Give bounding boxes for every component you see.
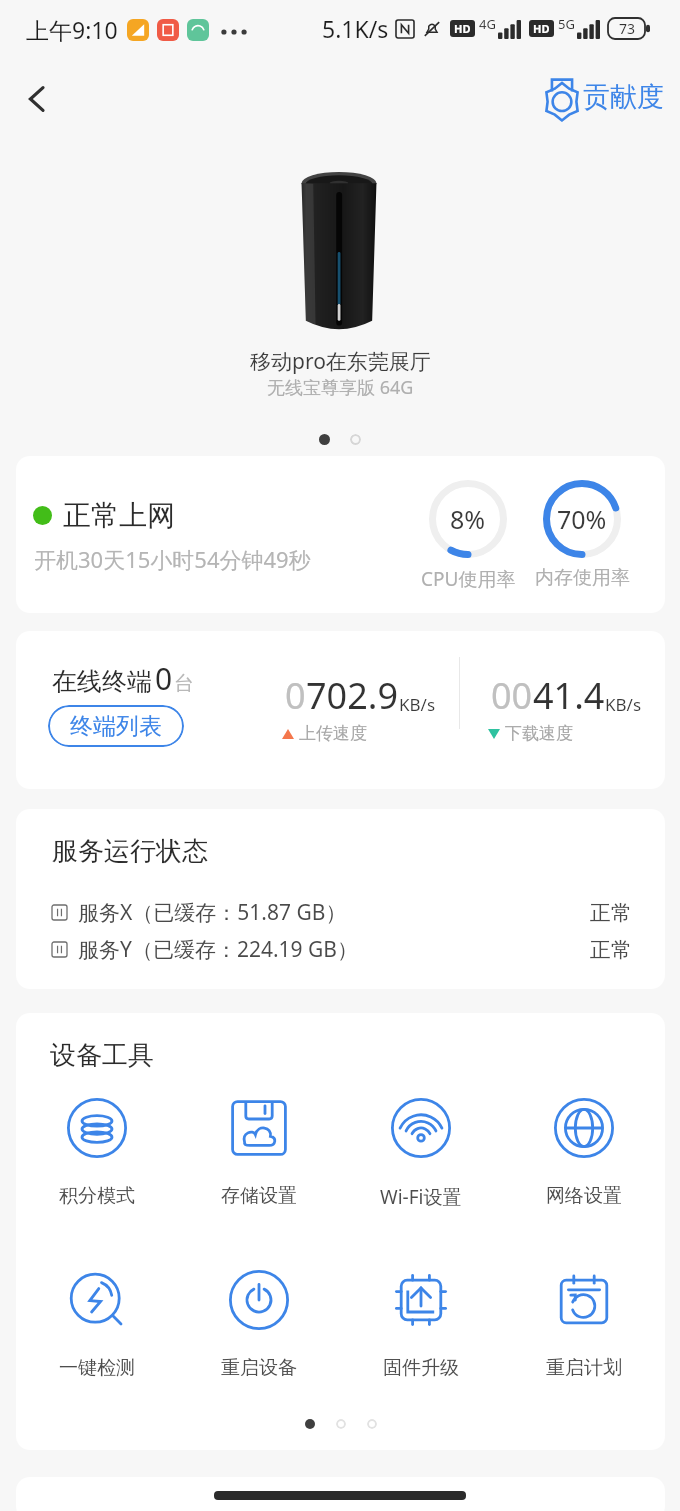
staticText: 网络设置: [546, 1184, 622, 1208]
staticText: 终端列表: [70, 712, 162, 741]
button[interactable]: 网络设置: [509, 1088, 659, 1218]
button[interactable]: Device 1: [319, 434, 330, 445]
staticText: 下载速度: [505, 723, 573, 744]
button[interactable]: Back: [8, 70, 66, 128]
staticText: 无线宝尊享版 64G: [267, 375, 414, 400]
staticText: 正常: [590, 937, 632, 963]
staticText: 73: [619, 19, 636, 38]
button[interactable]: 重启设备: [184, 1260, 334, 1390]
button[interactable]: 一键检测: [22, 1260, 172, 1390]
staticText: 8%: [450, 502, 486, 536]
staticText: 内存使用率: [535, 566, 630, 590]
staticText: 上午9:10: [26, 14, 118, 45]
button[interactable]: 积分模式: [22, 1088, 172, 1218]
button[interactable]: Wi-Fi设置: [346, 1088, 496, 1218]
staticText: 41.4: [533, 671, 605, 720]
staticText: KB/s: [605, 693, 642, 716]
button[interactable]: Page 3: [367, 1419, 377, 1429]
staticText: 服务Y（已缓存：224.19 GB）: [78, 935, 358, 964]
staticText: 00: [491, 671, 533, 720]
button[interactable]: 贡献度: [540, 72, 668, 124]
staticText: 设备工具: [50, 1039, 154, 1072]
staticText: 服务运行状态: [52, 835, 208, 868]
button[interactable]: 固件升级: [346, 1260, 496, 1390]
button[interactable]: Device 2: [350, 434, 361, 445]
staticText: 服务X（已缓存：51.87 GB）: [78, 898, 347, 927]
staticText: 重启设备: [221, 1356, 297, 1380]
staticText: 一键检测: [59, 1356, 135, 1380]
staticText: 上传速度: [299, 723, 367, 744]
staticText: 在线终端: [52, 666, 152, 697]
staticText: 移动pro在东莞展厅: [250, 347, 431, 376]
staticText: 积分模式: [59, 1184, 135, 1208]
staticText: 开机30天15小时54分钟49秒: [34, 544, 311, 574]
button[interactable]: Page 1: [305, 1419, 315, 1429]
staticText: HD: [454, 21, 471, 36]
staticText: 4G: [479, 15, 496, 33]
button[interactable]: 终端列表: [48, 705, 184, 747]
staticText: 正常上网: [63, 498, 175, 533]
button[interactable]: 重启计划: [509, 1260, 659, 1390]
staticText: 贡献度: [583, 80, 664, 114]
staticText: KB/s: [399, 693, 436, 716]
button[interactable]: 存储设置: [184, 1088, 334, 1218]
staticText: 5.1K/s: [322, 13, 389, 44]
staticText: 0: [285, 671, 306, 720]
staticText: 正常: [590, 900, 632, 926]
staticText: Wi-Fi设置: [380, 1184, 462, 1210]
staticText: 0: [155, 658, 173, 699]
staticText: 重启计划: [546, 1356, 622, 1380]
button[interactable]: Page 2: [336, 1419, 346, 1429]
staticText: 5G: [558, 15, 575, 33]
staticText: HD: [533, 21, 550, 36]
staticText: 台: [174, 671, 194, 696]
staticText: CPU使用率: [421, 566, 516, 592]
staticText: 702.9: [306, 671, 399, 720]
staticText: 固件升级: [383, 1356, 459, 1380]
staticText: 70%: [557, 502, 607, 536]
staticText: 存储设置: [221, 1184, 297, 1208]
